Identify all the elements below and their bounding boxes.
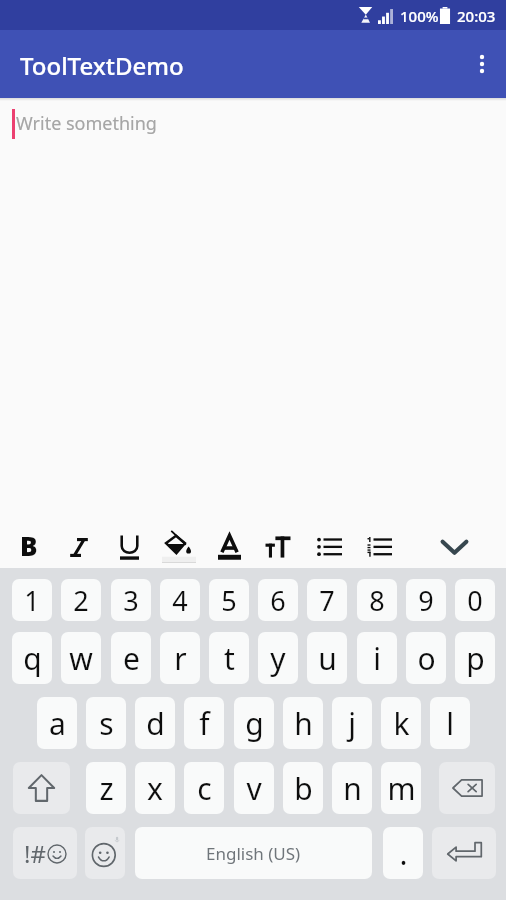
- staticText: 4: [172, 582, 188, 619]
- staticText: B: [20, 528, 38, 563]
- button[interactable]: Text colour: [206, 524, 252, 570]
- staticText: !#: [24, 837, 46, 870]
- staticText: y: [270, 638, 286, 679]
- staticText: i: [373, 638, 381, 679]
- button[interactable]: y: [258, 632, 298, 684]
- staticText: ToolTextDemo: [20, 49, 184, 82]
- button[interactable]: v: [234, 762, 274, 814]
- button[interactable]: 6: [258, 579, 298, 621]
- button[interactable]: Enter: [432, 827, 496, 879]
- staticText: d: [146, 703, 165, 744]
- button[interactable]: i: [357, 632, 397, 684]
- staticText: 100%: [400, 6, 439, 26]
- staticText: e: [123, 638, 140, 679]
- button[interactable]: r: [160, 632, 200, 684]
- staticText: 6: [270, 582, 286, 619]
- staticText: j: [348, 703, 356, 744]
- staticText: u: [318, 638, 337, 679]
- button[interactable]: x: [135, 762, 175, 814]
- staticText: l: [446, 703, 454, 744]
- button[interactable]: g: [234, 697, 274, 749]
- staticText: 2: [73, 582, 89, 619]
- button[interactable]: f: [184, 697, 224, 749]
- staticText: h: [294, 703, 313, 744]
- staticText: 3: [123, 582, 139, 619]
- staticText: z: [99, 768, 114, 809]
- button[interactable]: u: [307, 632, 347, 684]
- button[interactable]: z: [86, 762, 126, 814]
- staticText: x: [147, 768, 163, 809]
- staticText: g: [245, 703, 264, 744]
- button[interactable]: Bulleted list: [306, 524, 352, 570]
- button[interactable]: b: [283, 762, 323, 814]
- staticText: 1: [24, 582, 40, 619]
- staticText: k: [393, 703, 410, 744]
- button[interactable]: Bold: [6, 524, 52, 570]
- button[interactable]: English (US): [135, 827, 372, 879]
- staticText: v: [246, 768, 262, 809]
- staticText: Write something: [16, 111, 157, 136]
- staticText: c: [197, 768, 212, 809]
- button[interactable]: 5: [209, 579, 249, 621]
- staticText: 9: [418, 582, 434, 619]
- button[interactable]: More options: [458, 30, 506, 98]
- button[interactable]: 4: [160, 579, 200, 621]
- button[interactable]: 3: [111, 579, 151, 621]
- button[interactable]: Numbered list: [356, 524, 402, 570]
- button[interactable]: .: [383, 827, 423, 879]
- button[interactable]: a: [37, 697, 77, 749]
- staticText: a: [49, 703, 66, 744]
- button[interactable]: 8: [357, 579, 397, 621]
- button[interactable]: l: [430, 697, 470, 749]
- button[interactable]: Emoji keyboard: [85, 827, 125, 879]
- button[interactable]: Italic: [56, 524, 102, 570]
- button[interactable]: c: [184, 762, 224, 814]
- button[interactable]: Fill colour: [155, 524, 201, 570]
- button[interactable]: 1: [12, 579, 52, 621]
- button[interactable]: Write something: [0, 98, 506, 528]
- staticText: p: [466, 638, 485, 679]
- button[interactable]: 9: [406, 579, 446, 621]
- button[interactable]: j: [332, 697, 372, 749]
- button[interactable]: e: [111, 632, 151, 684]
- button[interactable]: t: [209, 632, 249, 684]
- staticText: s: [99, 703, 114, 744]
- staticText: 20:03: [457, 6, 496, 26]
- staticText: n: [343, 768, 362, 809]
- button[interactable]: Underline: [106, 524, 152, 570]
- staticText: 5: [221, 582, 237, 619]
- staticText: 8: [369, 582, 385, 619]
- button[interactable]: h: [283, 697, 323, 749]
- staticText: m: [387, 768, 416, 809]
- staticText: 7: [319, 582, 335, 619]
- button[interactable]: p: [455, 632, 495, 684]
- button[interactable]: 7: [307, 579, 347, 621]
- button[interactable]: n: [332, 762, 372, 814]
- button[interactable]: s: [86, 697, 126, 749]
- staticText: w: [69, 638, 93, 679]
- button[interactable]: w: [61, 632, 101, 684]
- staticText: b: [294, 768, 313, 809]
- button[interactable]: 0: [455, 579, 495, 621]
- button[interactable]: m: [381, 762, 421, 814]
- staticText: q: [23, 638, 42, 679]
- button[interactable]: k: [381, 697, 421, 749]
- button[interactable]: o: [406, 632, 446, 684]
- button[interactable]: Shift: [13, 762, 70, 814]
- button[interactable]: 2: [61, 579, 101, 621]
- staticText: English (US): [206, 842, 301, 865]
- button[interactable]: Backspace: [439, 762, 495, 814]
- staticText: 0: [467, 582, 483, 619]
- staticText: r: [174, 638, 187, 679]
- staticText: .: [399, 833, 408, 874]
- button[interactable]: d: [135, 697, 175, 749]
- staticText: f: [199, 703, 210, 744]
- button[interactable]: q: [12, 632, 52, 684]
- staticText: o: [417, 638, 436, 679]
- staticText: t: [224, 638, 235, 679]
- button[interactable]: Symbols: [13, 827, 77, 879]
- button[interactable]: Collapse toolbar: [431, 524, 477, 570]
- button[interactable]: Text size: [255, 524, 301, 570]
